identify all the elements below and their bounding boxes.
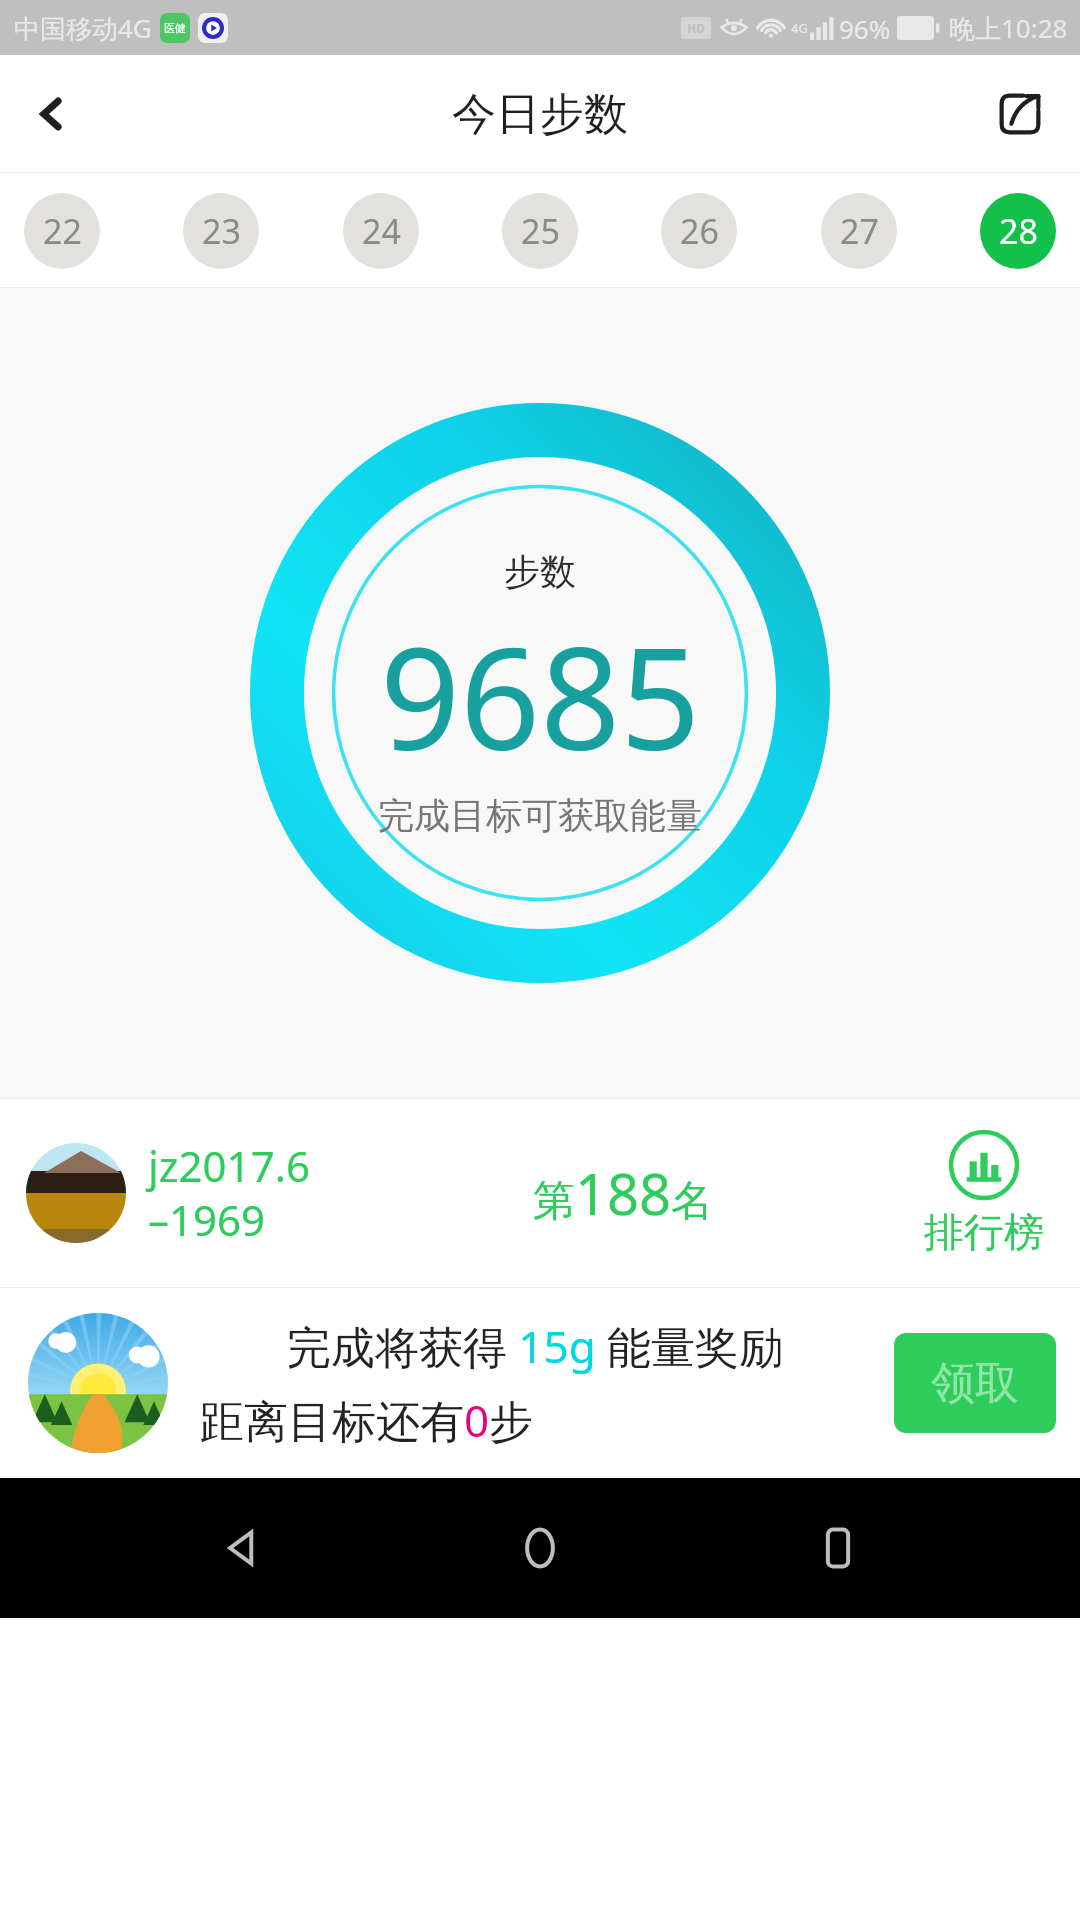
staticText: 完成将获得 15g 能量奖励 xyxy=(192,1316,878,1376)
button[interactable]: 28 xyxy=(980,193,1056,269)
staticText: 第188名 xyxy=(533,1155,714,1231)
button[interactable]: 26 xyxy=(661,193,737,269)
staticText: 23 xyxy=(202,208,241,254)
staticText: 24 xyxy=(362,208,401,254)
button[interactable]: 领取 xyxy=(894,1333,1056,1433)
staticText: 步数 xyxy=(504,549,576,594)
staticText: 26 xyxy=(680,208,719,254)
staticText: jz2017.6–1969 xyxy=(148,1137,323,1249)
button[interactable]: 27 xyxy=(821,193,897,269)
staticText: 96% xyxy=(839,11,891,46)
staticText: 9685 xyxy=(380,600,701,791)
button[interactable]: 22 xyxy=(24,193,100,269)
button[interactable]: Back xyxy=(188,1493,298,1603)
staticText: HD xyxy=(687,20,705,36)
button[interactable]: Recents xyxy=(783,1493,893,1603)
button[interactable]: 25 xyxy=(502,193,578,269)
staticText: 距离目标还有0步 xyxy=(200,1390,534,1450)
button[interactable]: 23 xyxy=(183,193,259,269)
button[interactable]: 排行榜 xyxy=(914,1098,1054,1288)
staticText: 排行榜 xyxy=(924,1207,1044,1257)
staticText: 27 xyxy=(840,208,879,254)
staticText: 4G xyxy=(791,19,808,37)
staticText: 28 xyxy=(999,208,1038,254)
staticText: 今日步数 xyxy=(452,87,628,142)
staticText: 领取 xyxy=(931,1356,1019,1411)
staticText: 完成目标可获取能量 xyxy=(378,793,702,838)
button[interactable]: 24 xyxy=(343,193,419,269)
button[interactable]: Back xyxy=(14,76,90,152)
button[interactable]: Share xyxy=(982,76,1058,152)
staticText: 晚上10:28 xyxy=(949,10,1068,46)
button[interactable]: Home xyxy=(485,1493,595,1603)
staticText: 医健 xyxy=(164,21,186,35)
staticText: 25 xyxy=(521,208,560,254)
staticText: 中国移动4G xyxy=(14,10,152,46)
staticText: 22 xyxy=(43,208,82,254)
